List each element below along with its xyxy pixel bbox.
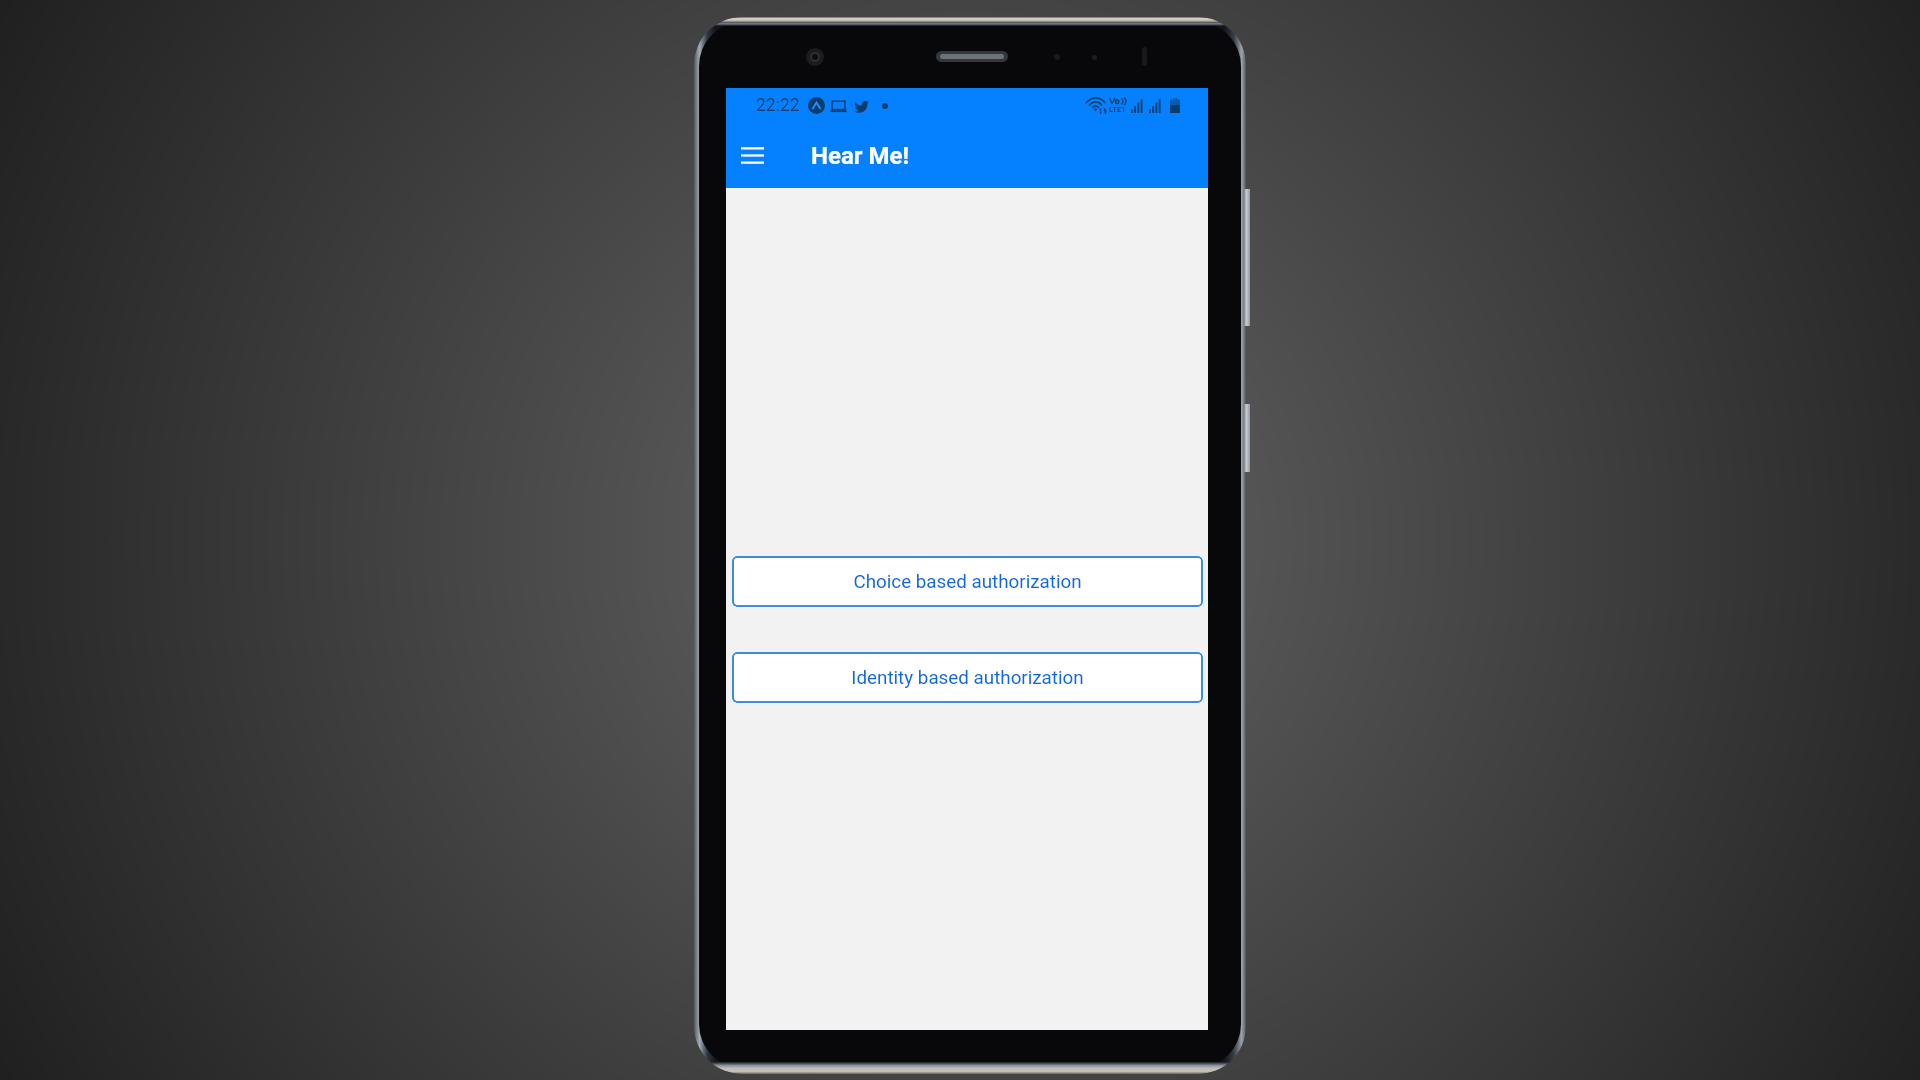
- button[interactable]: Identity based authorization: [732, 652, 1203, 703]
- button[interactable]: Choice based authorization: [732, 556, 1203, 607]
- staticText: Choice based authorization: [853, 571, 1082, 593]
- staticText: 22:22: [756, 95, 800, 116]
- staticText: Hear Me!: [811, 142, 910, 170]
- staticText: Identity based authorization: [851, 667, 1084, 689]
- button[interactable]: Open navigation menu: [728, 131, 776, 179]
- staticText: LTE1: [1109, 105, 1126, 114]
